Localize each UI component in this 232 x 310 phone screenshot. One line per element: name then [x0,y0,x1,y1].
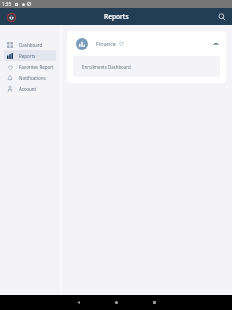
button[interactable] [4,83,56,94]
button[interactable]: Collapse [211,39,220,48]
button[interactable]: Enrollments Dashboard [73,56,220,77]
button[interactable] [4,39,56,50]
staticText: 1:35 [2,1,12,7]
staticText: Dashboard [19,42,43,48]
button[interactable] [4,50,56,61]
staticText: Favorites Report [19,64,54,70]
staticText: Account [19,86,37,92]
button[interactable]: Back [69,295,87,310]
staticText: Enrollments Dashboard [82,64,131,70]
button[interactable]: Search [216,11,227,22]
button[interactable]: Recents [145,295,163,310]
staticText: Notifications [19,75,46,81]
button[interactable] [4,61,56,72]
button[interactable]: Favorite [118,40,125,47]
staticText: Reports [104,12,129,21]
staticText: Reports [19,53,36,59]
button[interactable]: App logo [6,12,16,22]
button[interactable] [4,72,56,83]
button[interactable]: Home [107,295,125,310]
button[interactable]: Finance [67,31,226,56]
staticText: Finance [96,40,116,47]
